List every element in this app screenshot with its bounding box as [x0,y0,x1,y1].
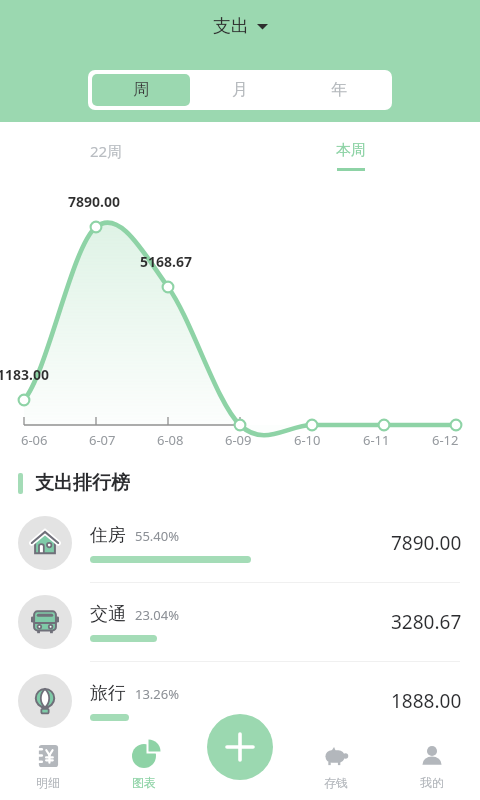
button[interactable]: 图表 [96,733,192,800]
staticText: 6-07 [89,431,116,449]
button[interactable]: Add [207,714,273,780]
staticText: 6-08 [157,431,184,449]
button[interactable]: 我的 [384,733,480,800]
staticText: 我的 [420,775,444,790]
staticText: 1183.00 [0,365,49,384]
staticText: 7890.00 [391,530,462,556]
staticText: 交通 [90,603,126,626]
staticText: 22周 [90,141,123,161]
staticText: 旅行 [90,682,126,705]
staticText: 支出 [213,15,249,38]
staticText: 存钱 [324,775,348,790]
staticText: 本周 [336,141,366,160]
button[interactable]: 支出 [205,12,276,41]
staticText: 6-12 [432,431,459,449]
button[interactable]: 本周 [330,138,372,174]
button[interactable]: 住房 [0,504,480,582]
staticText: 年 [331,80,347,100]
staticText: 3280.67 [391,609,462,635]
staticText: 7890.00 [68,192,120,211]
staticText: 13.26% [135,685,180,703]
button[interactable]: 旅行 [0,662,480,740]
staticText: 图表 [132,775,156,790]
staticText: 55.40% [135,527,180,545]
button[interactable]: 年 [289,74,388,106]
staticText: 周 [133,80,149,100]
staticText: 1888.00 [391,688,462,714]
staticText: 明细 [36,775,60,790]
button[interactable]: 22周 [84,138,129,164]
staticText: 5168.67 [140,252,192,271]
staticText: 月 [232,80,248,100]
button[interactable]: 月 [190,74,289,106]
button[interactable]: 存钱 [288,733,384,800]
staticText: 6-10 [294,431,321,449]
staticText: 6-11 [363,431,390,449]
staticText: 6-06 [21,431,48,449]
staticText: 6-09 [225,431,252,449]
staticText: 支出排行榜 [35,471,130,495]
staticText: 23.04% [135,606,180,624]
staticText: 住房 [90,524,126,547]
button[interactable]: 明细 [0,733,96,800]
button[interactable]: 周 [92,74,190,106]
button[interactable]: 交通 [0,583,480,661]
